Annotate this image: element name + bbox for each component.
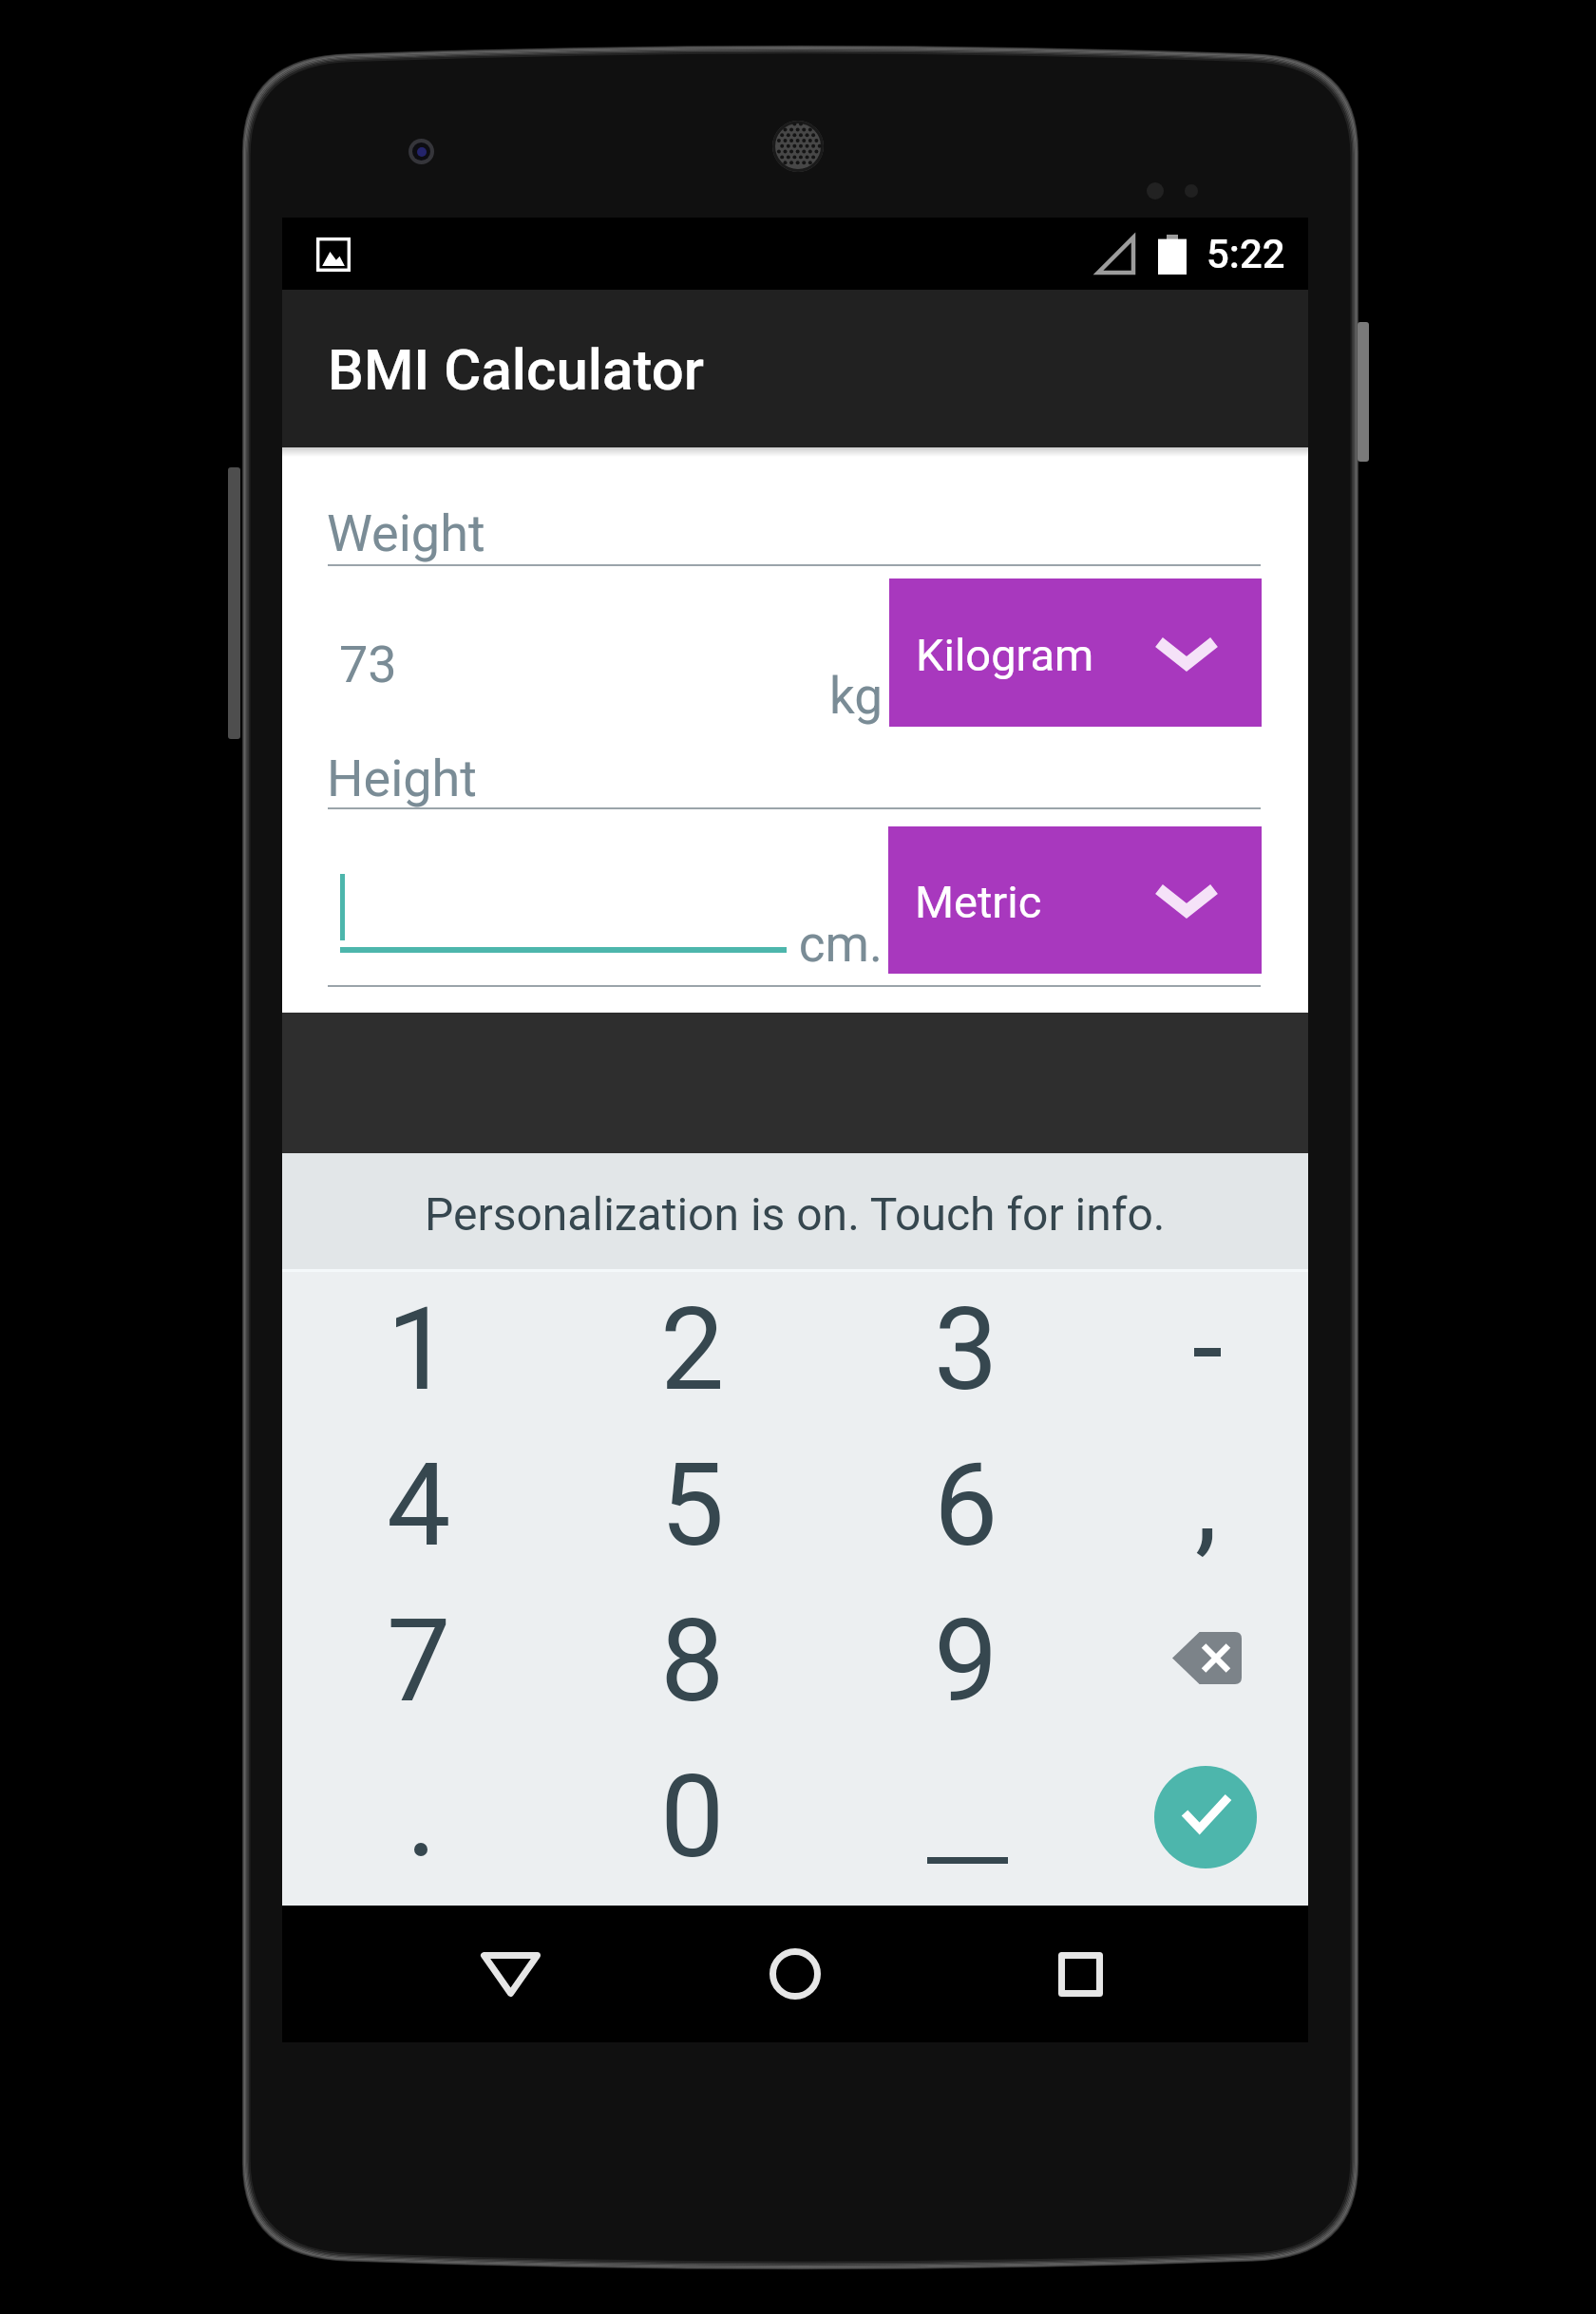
button[interactable]: Comma <box>1103 1428 1308 1584</box>
button[interactable]: Done <box>1103 1739 1308 1895</box>
button[interactable]: Decimal point <box>282 1739 556 1895</box>
button[interactable]: Weight value <box>328 578 882 727</box>
staticText: 3 <box>934 1283 998 1417</box>
staticText: BMI Calculator <box>328 336 704 403</box>
button[interactable]: Underscore <box>829 1739 1103 1895</box>
button[interactable]: 9 <box>829 1584 1103 1739</box>
button[interactable]: 5 <box>556 1428 829 1584</box>
staticText: cm. <box>741 915 883 974</box>
staticText: 9 <box>934 1595 998 1729</box>
button[interactable]: Height value <box>328 826 882 974</box>
button[interactable]: Recent apps <box>938 1906 1223 2042</box>
button[interactable]: Kilogram <box>889 578 1262 727</box>
staticText: 5 <box>660 1439 725 1573</box>
button[interactable]: 1 <box>282 1272 556 1428</box>
staticText: , <box>1195 1435 1218 1569</box>
staticText: kg <box>741 667 883 726</box>
button[interactable]: 6 <box>829 1428 1103 1584</box>
staticText: 2 <box>660 1283 725 1417</box>
button[interactable]: Back <box>368 1906 653 2042</box>
staticText: Weight <box>327 503 485 563</box>
button[interactable]: Minus <box>1103 1272 1308 1428</box>
staticText: Height <box>327 749 478 808</box>
button[interactable]: 0 <box>556 1739 829 1895</box>
button[interactable]: 7 <box>282 1584 556 1739</box>
button[interactable]: Personalization is on. Touch for info. <box>282 1153 1308 1272</box>
button[interactable]: 3 <box>829 1272 1103 1428</box>
staticText: 4 <box>387 1439 451 1573</box>
button[interactable]: 4 <box>282 1428 556 1584</box>
staticText: 1 <box>387 1283 451 1417</box>
button[interactable]: Home <box>653 1906 938 2042</box>
staticText: 73 <box>339 635 397 694</box>
button[interactable]: 2 <box>556 1272 829 1428</box>
staticText: Metric <box>915 876 1042 928</box>
button[interactable]: Delete <box>1103 1584 1308 1739</box>
button[interactable]: Metric <box>888 826 1262 974</box>
staticText: 7 <box>387 1595 451 1729</box>
staticText: Kilogram <box>916 629 1094 681</box>
button[interactable]: 8 <box>556 1584 829 1739</box>
staticText: 8 <box>660 1595 725 1729</box>
staticText: 6 <box>934 1439 998 1573</box>
staticText: 5:22 <box>1206 231 1285 277</box>
staticText: 0 <box>660 1751 725 1885</box>
staticText: Personalization is on. Touch for info. <box>425 1187 1166 1241</box>
